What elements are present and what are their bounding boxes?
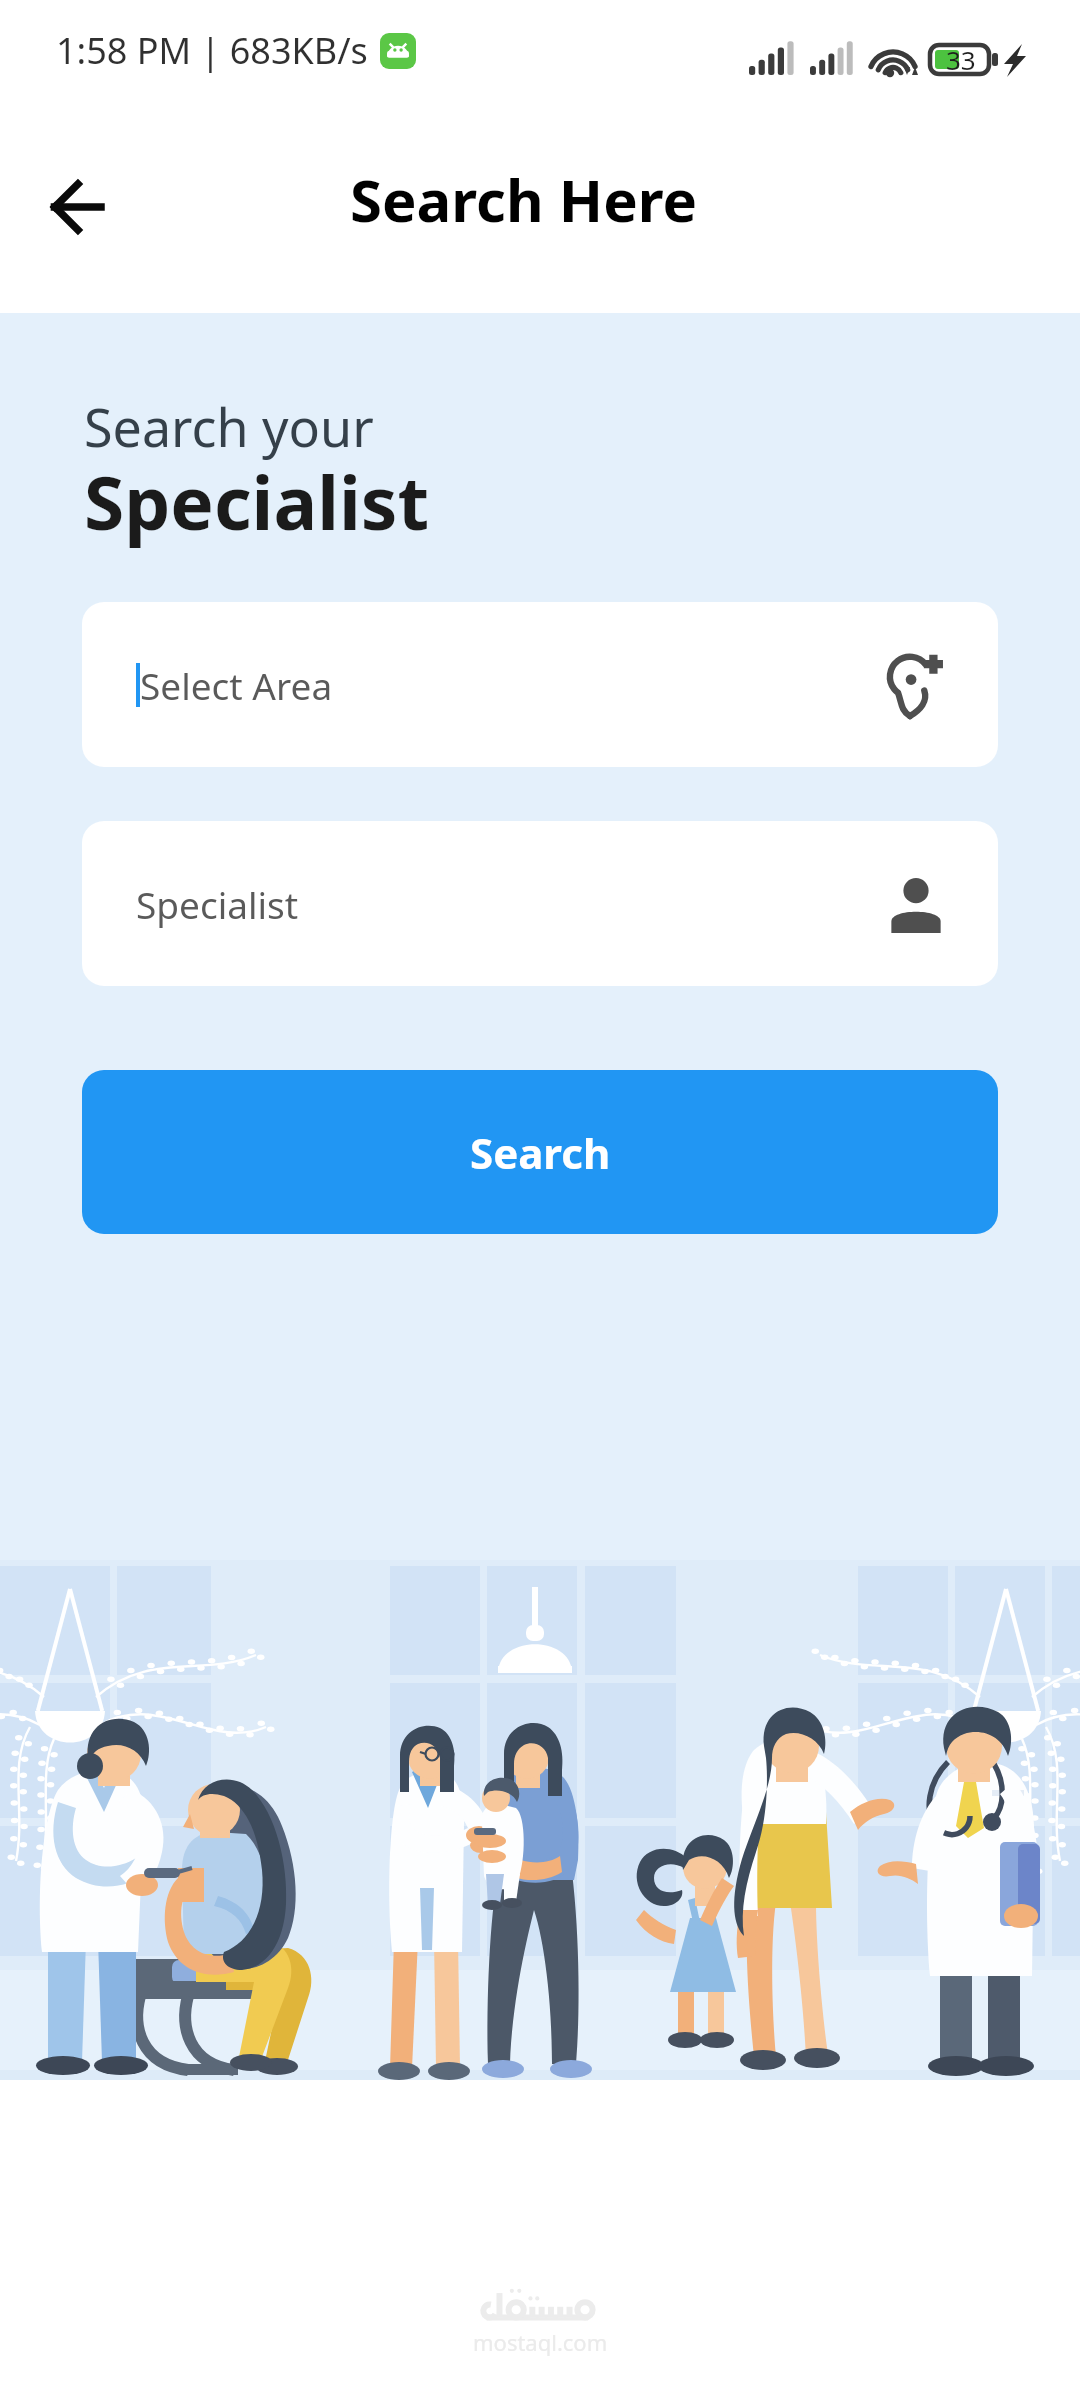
staticText: Search Here <box>350 160 698 239</box>
staticText: mostaql.com <box>473 2327 608 2357</box>
staticText: 1:58 PM | 683KB/s <box>56 26 368 75</box>
button[interactable]: Use my location <box>878 647 954 723</box>
staticText: Specialist <box>136 879 299 929</box>
button[interactable]: Back <box>34 164 120 250</box>
staticText: Search <box>470 1124 611 1181</box>
button[interactable]: Specialist <box>82 821 998 986</box>
button[interactable]: Select Area <box>82 602 998 767</box>
staticText: Specialist <box>84 452 430 551</box>
button[interactable]: Choose specialist <box>878 866 954 942</box>
staticText: Search your <box>84 391 374 462</box>
button[interactable]: Search <box>82 1070 998 1234</box>
staticText: 33 <box>946 42 976 77</box>
staticText: Select Area <box>140 660 333 710</box>
